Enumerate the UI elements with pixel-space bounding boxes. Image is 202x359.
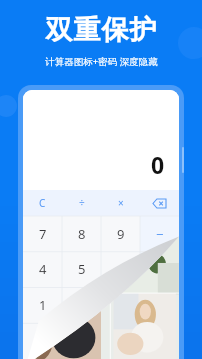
staticText: 计算器图标+密码 深度隐藏 <box>45 55 158 68</box>
staticText: 8 <box>78 225 86 243</box>
staticText: 6 <box>117 260 125 278</box>
staticText: 4 <box>39 260 47 278</box>
button[interactable]: 0 <box>62 323 101 359</box>
staticText: 9 <box>117 225 125 243</box>
staticText: ÷ <box>79 196 85 210</box>
button[interactable]: 3 <box>101 287 140 323</box>
button[interactable]: 9 <box>101 216 140 251</box>
staticText: 1 <box>39 296 47 314</box>
staticText: . <box>119 332 123 350</box>
staticText: 7 <box>39 225 47 243</box>
button[interactable]: 7 <box>23 216 62 251</box>
staticText: 双重保护 <box>45 13 157 47</box>
button[interactable]: × <box>101 190 140 216</box>
button[interactable]: 6 <box>101 251 140 287</box>
button[interactable]: = <box>140 287 179 323</box>
button[interactable]: 2 <box>62 287 101 323</box>
button[interactable]: . <box>101 323 140 359</box>
button[interactable]: C <box>23 190 62 216</box>
staticText: C <box>39 196 46 210</box>
button[interactable]: 4 <box>23 251 62 287</box>
button[interactable]: Backspace <box>140 190 179 216</box>
staticText: × <box>118 196 124 210</box>
button[interactable]: ÷ <box>62 190 101 216</box>
staticText: − <box>156 225 164 243</box>
staticText: + <box>156 260 164 278</box>
button[interactable]: 8 <box>62 216 101 251</box>
button[interactable]: − <box>140 216 179 251</box>
button[interactable]: + <box>140 251 179 287</box>
button[interactable]: 1 <box>23 287 62 323</box>
button[interactable]: % <box>23 323 62 359</box>
staticText: 0 <box>151 149 165 180</box>
button[interactable]: 5 <box>62 251 101 287</box>
staticText: 5 <box>78 260 86 278</box>
button[interactable] <box>140 323 179 359</box>
